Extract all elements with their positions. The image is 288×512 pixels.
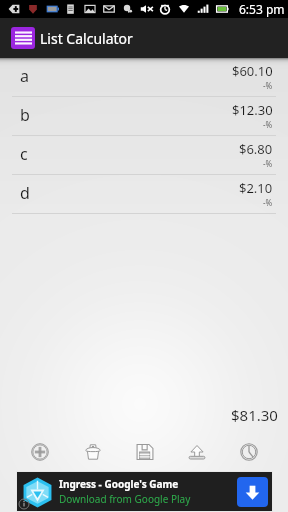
button[interactable]: d <box>0 175 288 214</box>
button[interactable]: History <box>223 441 275 463</box>
button[interactable]: a <box>0 58 288 97</box>
staticText: a <box>20 65 29 87</box>
staticText: 6:53 pm <box>239 1 285 17</box>
button[interactable]: List Calculator <box>0 18 288 58</box>
staticText: b <box>20 104 30 126</box>
button[interactable]: Install app <box>237 477 268 507</box>
staticText: Download from Google Play <box>59 492 191 506</box>
staticText: d <box>20 182 30 204</box>
staticText: $12.30 <box>232 101 273 119</box>
staticText: $81.30 <box>231 405 278 425</box>
staticText: $60.10 <box>232 62 273 80</box>
button[interactable]: b <box>0 97 288 136</box>
staticText: $6.80 <box>239 140 273 158</box>
button[interactable]: c <box>0 136 288 175</box>
staticText: $2.10 <box>239 179 273 197</box>
staticText: -% <box>263 197 273 208</box>
staticText: -% <box>263 119 273 130</box>
button[interactable]: Add item <box>13 441 66 463</box>
button[interactable]: Delete <box>66 441 119 463</box>
staticText: List Calculator <box>40 29 133 48</box>
staticText: -% <box>263 80 273 91</box>
staticText: -% <box>263 158 273 169</box>
button[interactable]: Load <box>171 441 223 463</box>
button[interactable]: Save <box>119 441 171 463</box>
staticText: c <box>20 143 28 165</box>
staticText: Ingress - Google's Game <box>59 477 179 491</box>
button[interactable]: Ingress - Google's Game <box>17 472 272 511</box>
